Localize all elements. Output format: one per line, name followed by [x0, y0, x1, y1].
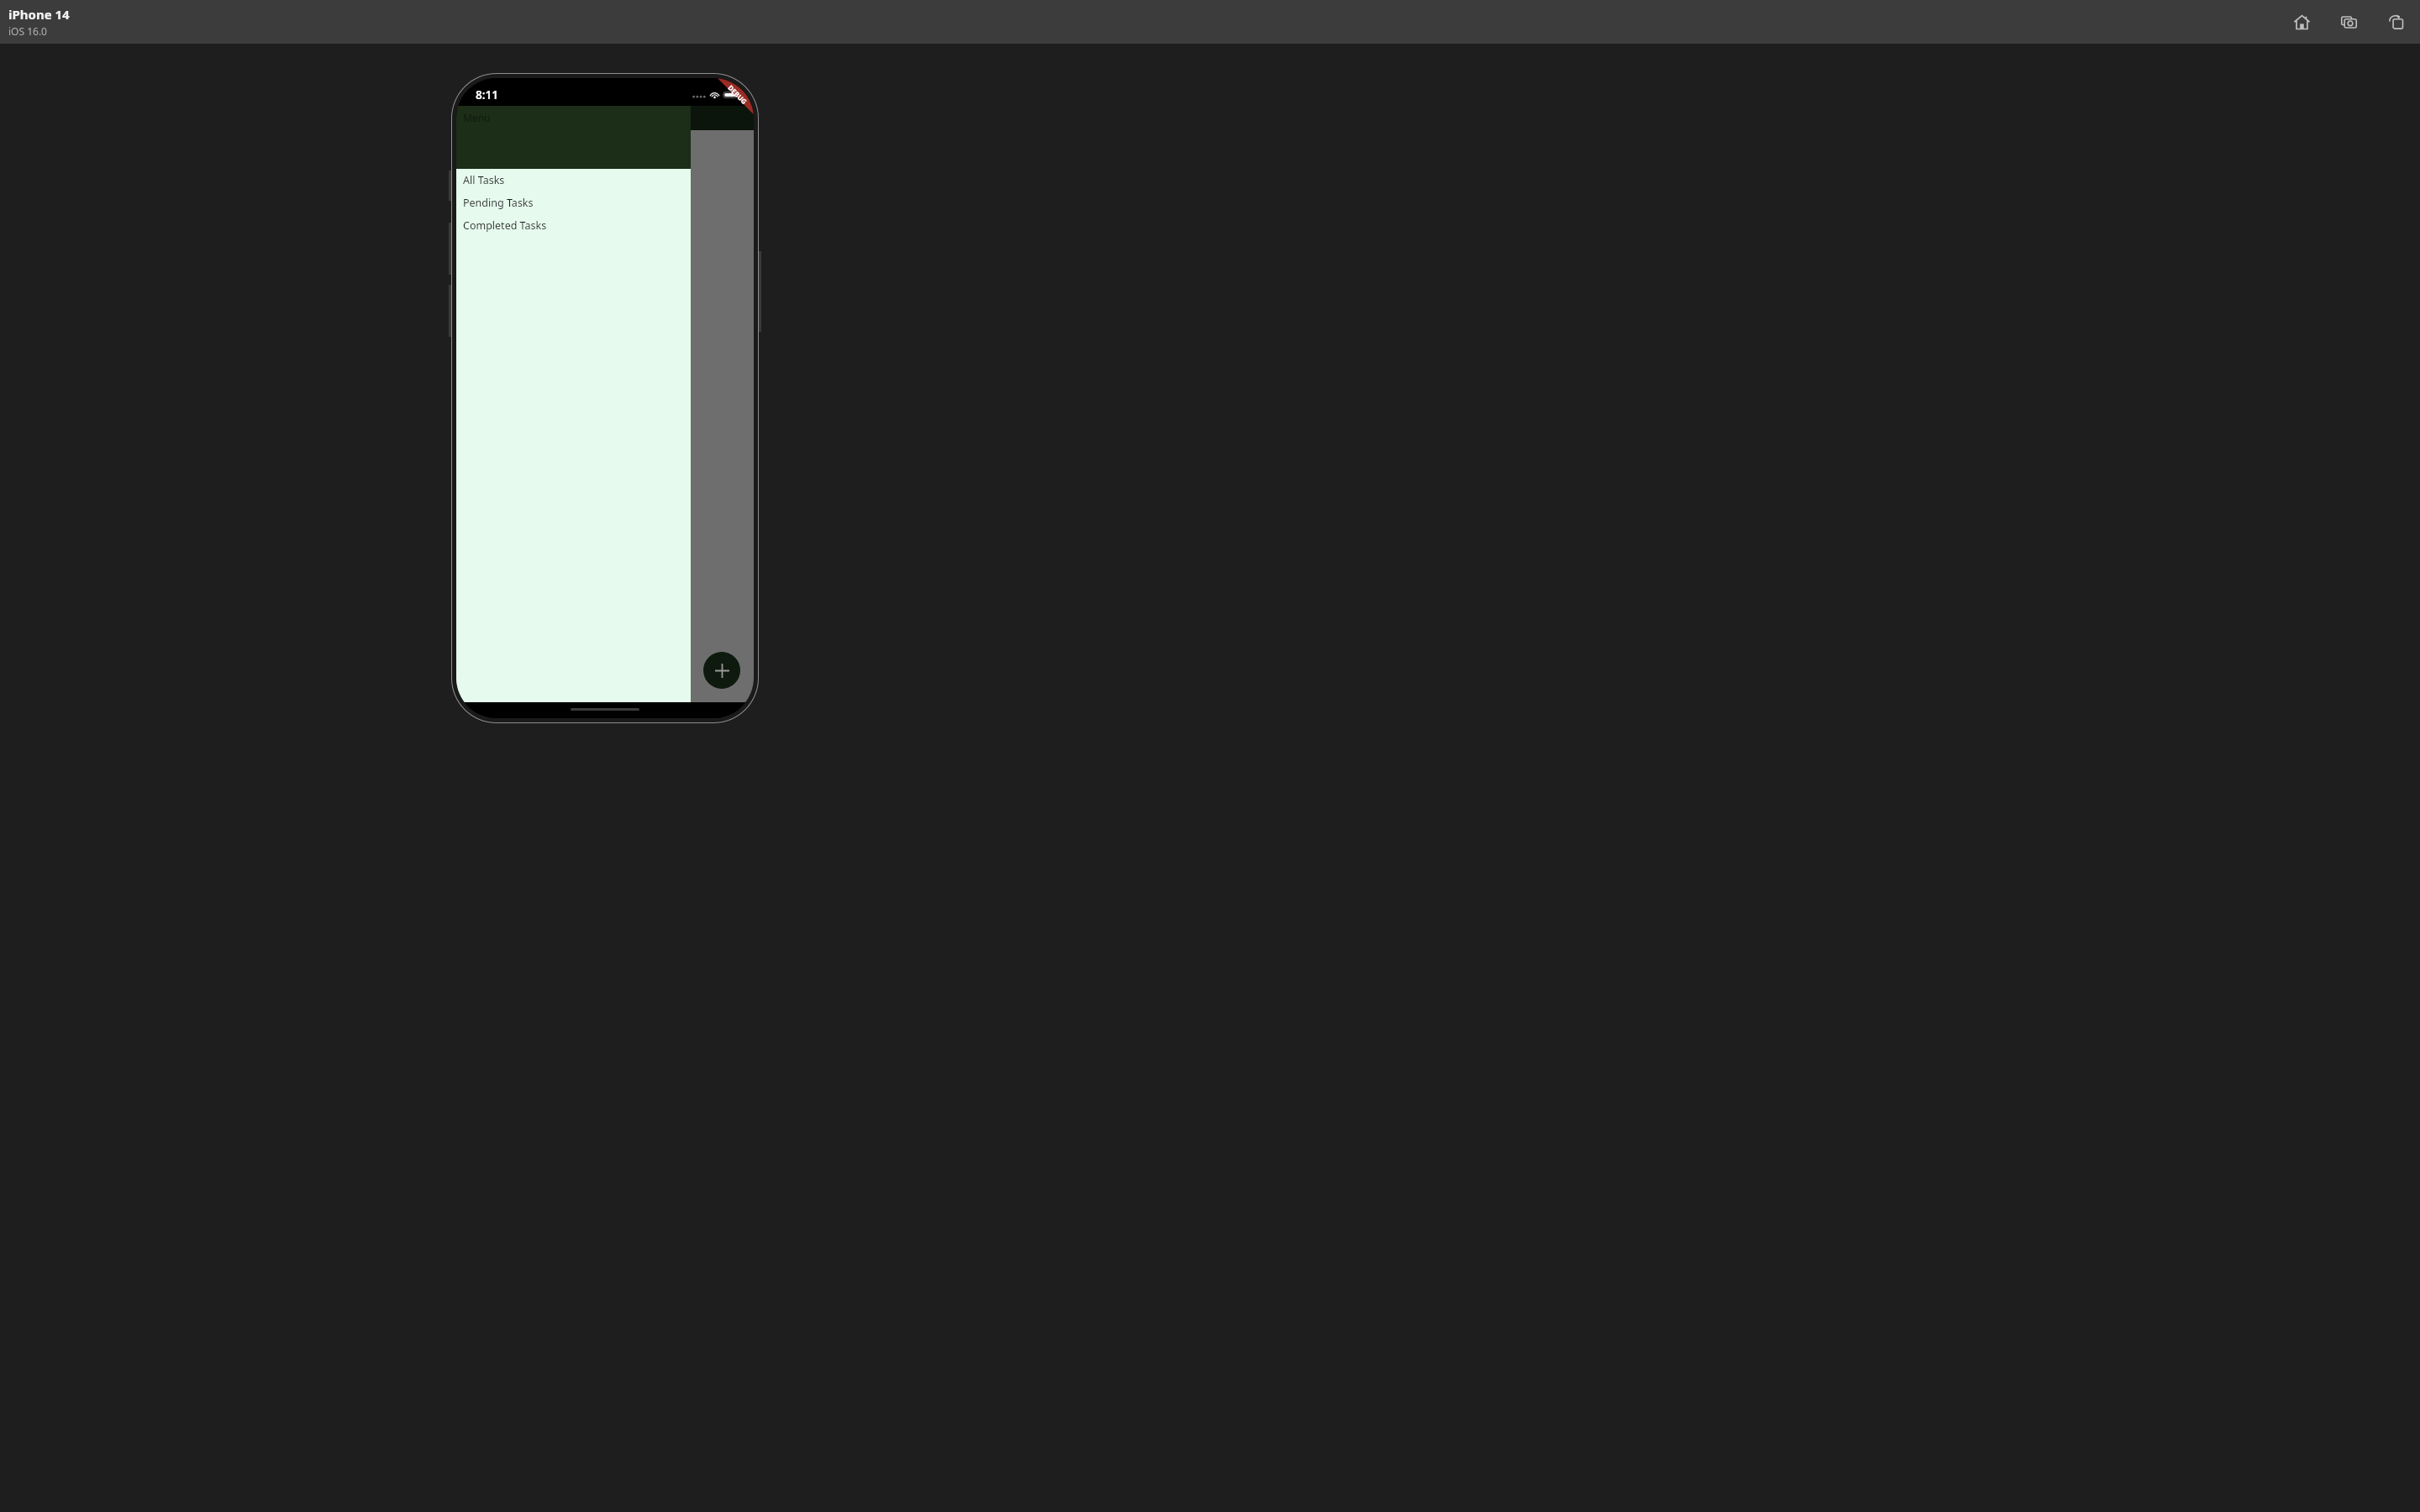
- staticText: 8:11: [476, 87, 498, 102]
- button[interactable]: Rotate: [2383, 9, 2408, 34]
- staticText: All Tasks: [463, 173, 505, 187]
- button[interactable]: Pending Tasks: [456, 192, 691, 214]
- button[interactable]: Screenshot: [2336, 9, 2361, 34]
- button[interactable]: Add task: [703, 652, 740, 689]
- button[interactable]: Home: [2289, 9, 2314, 34]
- staticText: Pending Tasks: [463, 196, 534, 210]
- button[interactable]: Completed Tasks: [456, 214, 691, 237]
- staticText: Menu: [463, 111, 491, 124]
- staticText: iPhone 14: [8, 6, 70, 23]
- staticText: DEBUG: [726, 83, 749, 106]
- button[interactable]: All Tasks: [456, 169, 691, 192]
- staticText: iOS 16.0: [8, 24, 47, 38]
- staticText: Completed Tasks: [463, 218, 547, 233]
